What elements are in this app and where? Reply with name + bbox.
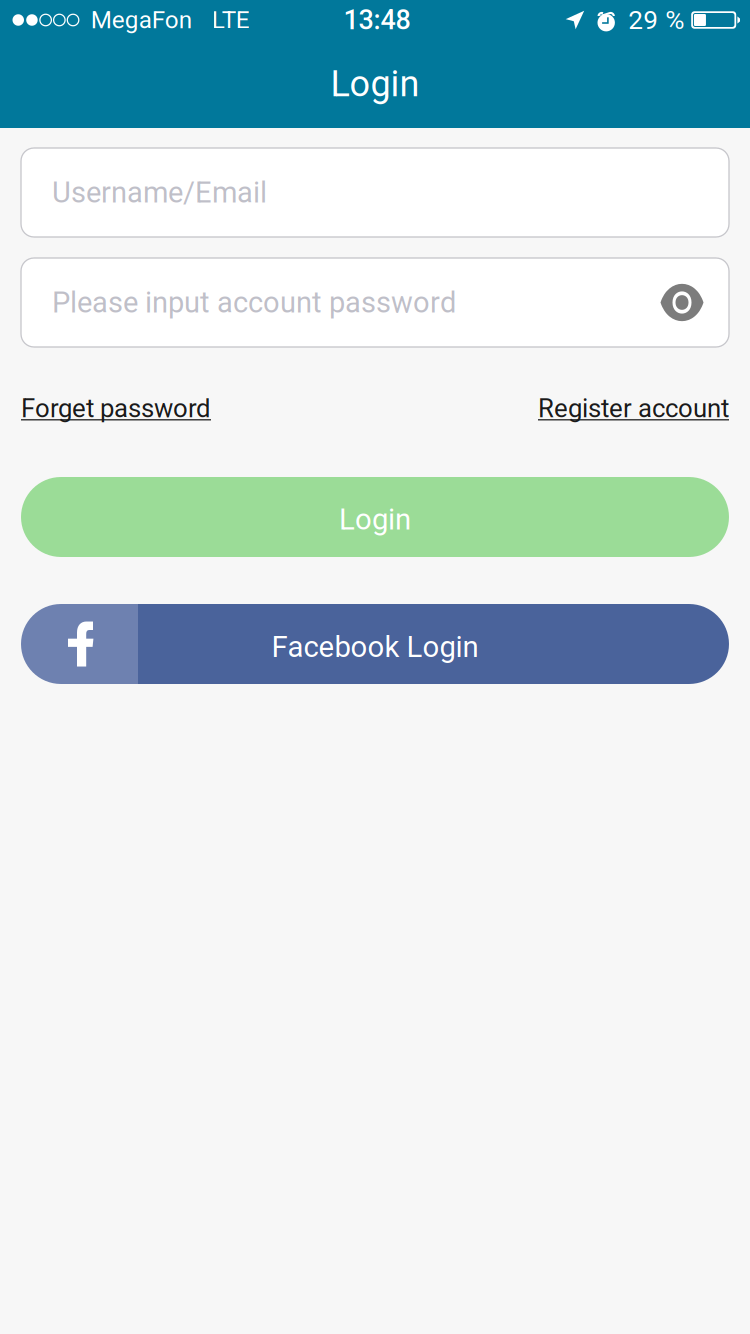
button[interactable]: Login [21,477,729,557]
button[interactable]: Username/Email [21,148,729,237]
button[interactable]: Forget password [21,393,211,424]
button[interactable]: Register account [538,393,729,424]
staticText: Please input account password [52,285,456,320]
button[interactable]: Show password [660,285,703,320]
staticText: Login [330,63,419,105]
staticText: Facebook Login [271,630,478,664]
staticText: Username/Email [52,175,267,210]
button[interactable]: Facebook Login [21,604,729,684]
staticText: LTE [212,6,250,34]
staticText: Register account [538,393,729,424]
staticText: 13:48 [343,4,410,36]
staticText: 29 % [628,5,684,35]
staticText: Forget password [21,393,211,424]
staticText: MegaFon [91,6,192,34]
staticText: Login [339,502,411,537]
button[interactable]: Please input account password [21,258,729,347]
